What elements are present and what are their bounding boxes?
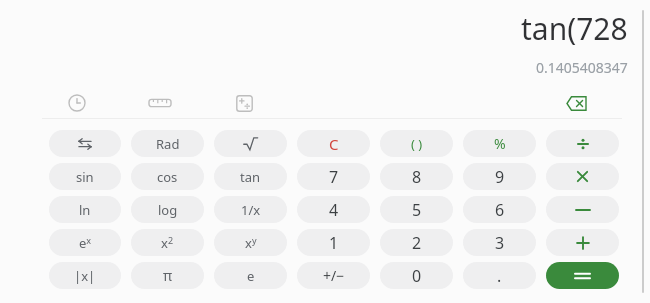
staticText: 2	[412, 232, 422, 254]
button[interactable]: 7	[297, 163, 370, 190]
button[interactable]: 4	[297, 196, 370, 223]
button[interactable]: xy	[214, 229, 287, 256]
staticText: 0.1405408347	[536, 58, 628, 77]
staticText: 4	[329, 199, 339, 221]
staticText: +/−	[323, 266, 345, 285]
button[interactable]: 3	[463, 229, 536, 256]
staticText: 6	[495, 199, 505, 221]
staticText: 9	[495, 166, 505, 188]
button[interactable]: 8	[380, 163, 453, 190]
staticText: %	[494, 134, 506, 153]
button[interactable]: 9	[463, 163, 536, 190]
button[interactable]: Plus	[546, 229, 619, 256]
staticText: 7	[329, 166, 339, 188]
staticText: 5	[412, 199, 422, 221]
button[interactable]: Swap	[49, 130, 121, 157]
button[interactable]: ex	[49, 229, 121, 256]
staticText: e	[247, 267, 255, 285]
staticText: 3	[495, 232, 505, 254]
button[interactable]: Divide	[546, 130, 619, 157]
button[interactable]: Square root	[214, 130, 287, 157]
button[interactable]: |x|	[49, 262, 121, 289]
button[interactable]: 2	[380, 229, 453, 256]
button[interactable]: Scientific functions	[229, 88, 259, 118]
staticText: 1	[329, 232, 339, 254]
staticText: tan	[240, 168, 261, 186]
button[interactable]: Multiply	[546, 163, 619, 190]
button[interactable]: e	[214, 262, 287, 289]
staticText: .	[497, 265, 502, 287]
button[interactable]: Equals	[546, 262, 619, 289]
button[interactable]: cos	[131, 163, 204, 190]
button[interactable]: Rad	[131, 130, 204, 157]
staticText: 1/x	[241, 201, 261, 219]
button[interactable]: 1	[297, 229, 370, 256]
staticText: cos	[157, 168, 178, 186]
staticText: ln	[79, 201, 91, 219]
staticText: C	[329, 134, 339, 154]
button[interactable]: C	[297, 130, 370, 157]
staticText: log	[158, 201, 178, 219]
button[interactable]: sin	[49, 163, 121, 190]
staticText: |x|	[74, 267, 96, 285]
staticText: xy	[245, 234, 257, 252]
button[interactable]: Unit converter	[145, 88, 175, 118]
button[interactable]: ln	[49, 196, 121, 223]
staticText: sin	[76, 168, 94, 186]
staticText: 8	[412, 166, 422, 188]
button[interactable]: tan	[214, 163, 287, 190]
button[interactable]: 0	[380, 262, 453, 289]
staticText: 0	[412, 265, 422, 287]
button[interactable]: π	[131, 262, 204, 289]
staticText: Rad	[156, 135, 180, 153]
button[interactable]: 6	[463, 196, 536, 223]
staticText: x2	[161, 234, 174, 252]
button[interactable]: Backspace	[560, 88, 592, 118]
button[interactable]: ( )	[380, 130, 453, 157]
button[interactable]: log	[131, 196, 204, 223]
staticText: tan(728	[521, 8, 628, 49]
button[interactable]: Minus	[546, 196, 619, 223]
staticText: π	[163, 266, 173, 285]
staticText: ( )	[411, 135, 423, 153]
staticText: ex	[79, 234, 92, 252]
button[interactable]: 5	[380, 196, 453, 223]
button[interactable]: History	[62, 88, 92, 118]
button[interactable]: 1/x	[214, 196, 287, 223]
button[interactable]: .	[463, 262, 536, 289]
button[interactable]: %	[463, 130, 536, 157]
button[interactable]: x2	[131, 229, 204, 256]
button[interactable]: +/−	[297, 262, 370, 289]
